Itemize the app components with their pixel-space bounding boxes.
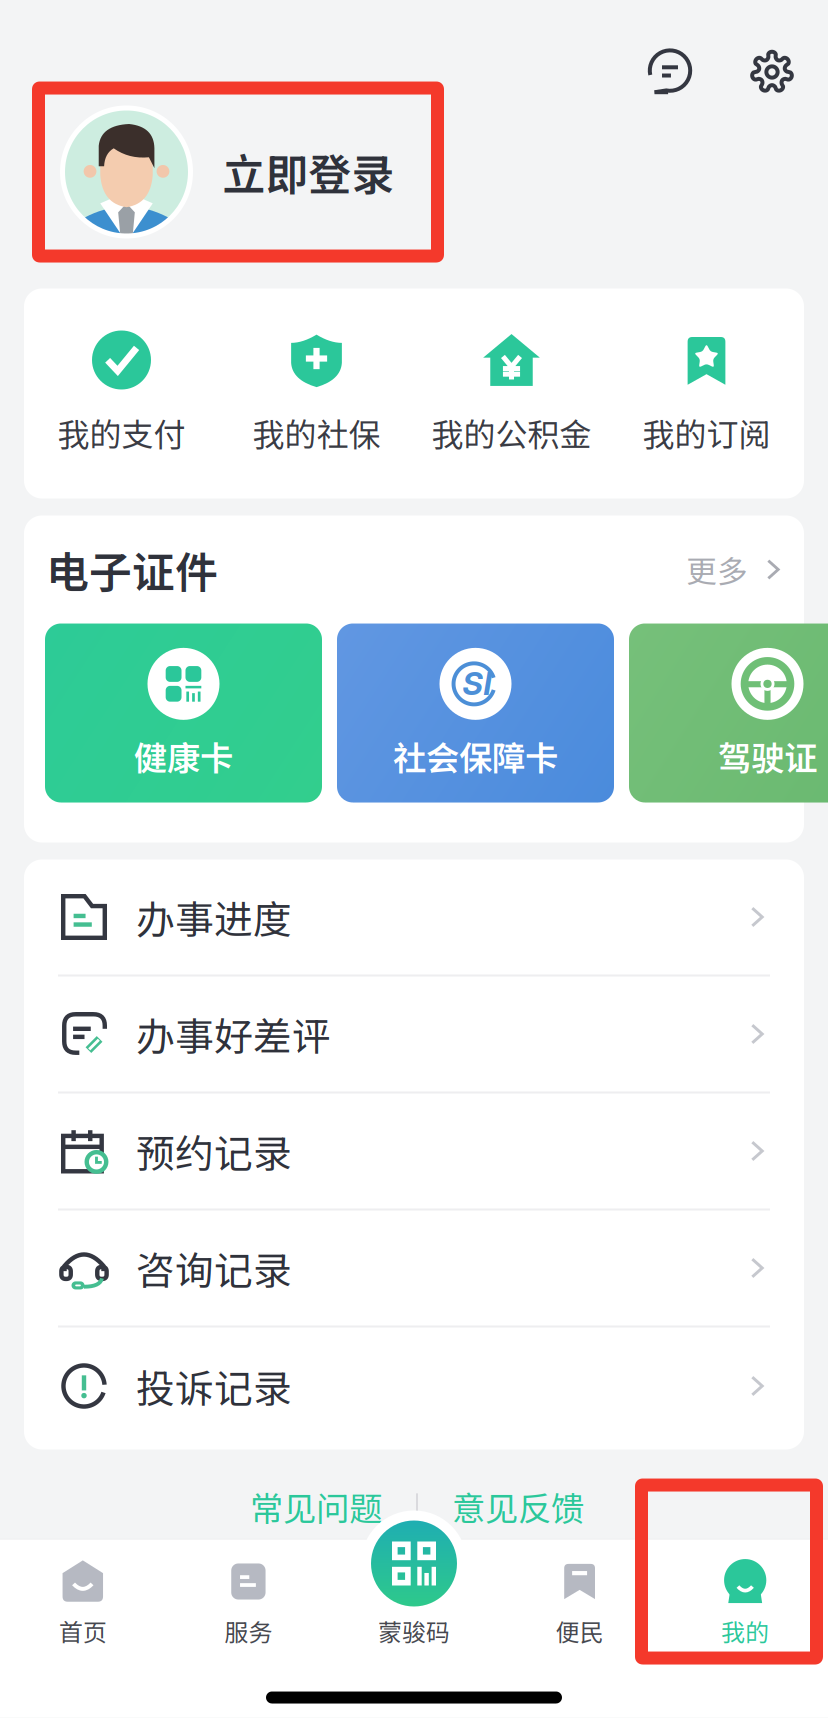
staticText: 更多 [686, 547, 748, 592]
button[interactable]: 设置 [737, 37, 807, 107]
button[interactable]: 我的订阅 [609, 330, 804, 456]
staticText: 我的 [721, 1613, 769, 1648]
staticText: 电子证件 [46, 539, 218, 600]
staticText: 投诉记录 [136, 1358, 292, 1414]
staticText: 意见反馈 [452, 1482, 584, 1530]
staticText: 常见问题 [250, 1482, 382, 1530]
staticText: 我的订阅 [642, 409, 770, 456]
button[interactable]: 我的支付 [24, 330, 219, 456]
staticText: 我的公积金 [431, 409, 591, 456]
button[interactable]: 立即登录 [38, 88, 437, 256]
staticText: 便民 [556, 1613, 604, 1648]
staticText: 蒙骏码 [378, 1613, 450, 1648]
staticText: 预约记录 [136, 1123, 292, 1179]
button[interactable]: 蒙骏码 [361, 1510, 467, 1616]
staticText: 服务 [224, 1613, 272, 1648]
staticText: 办事进度 [136, 889, 292, 945]
button[interactable]: 驾驶证 [629, 623, 828, 802]
button[interactable]: 投诉记录 [24, 1327, 804, 1444]
staticText: 办事好差评 [136, 1006, 331, 1062]
staticText: SI [462, 664, 492, 703]
staticText: 我的社保 [252, 409, 380, 456]
button[interactable]: 意见反馈 [452, 1482, 584, 1530]
staticText: 健康卡 [134, 732, 233, 780]
staticText: 首页 [59, 1613, 107, 1648]
button[interactable]: 我的社保 [219, 330, 414, 456]
button[interactable]: 我的公积金 [414, 330, 609, 456]
button[interactable]: 服务 [166, 1539, 331, 1663]
staticText: 社会保障卡 [393, 732, 558, 780]
button[interactable]: 常见问题 [250, 1482, 382, 1530]
button[interactable]: SI [337, 623, 614, 802]
staticText: 我的支付 [57, 409, 185, 456]
button[interactable]: 咨询记录 [24, 1210, 804, 1327]
staticText: 驾驶证 [718, 732, 817, 780]
button[interactable]: 预约记录 [24, 1093, 804, 1210]
button[interactable]: 首页 [0, 1539, 166, 1663]
staticText: 立即登录 [222, 141, 394, 203]
button[interactable]: 办事好差评 [24, 976, 804, 1093]
button[interactable]: 消息 [635, 37, 705, 107]
button[interactable]: 办事进度 [24, 859, 804, 976]
button[interactable]: 便民 [497, 1539, 662, 1663]
button[interactable]: 健康卡 [45, 623, 322, 802]
staticText: 咨询记录 [136, 1240, 292, 1296]
button[interactable]: 蒙骏码 [331, 1539, 497, 1663]
button[interactable]: 我的 [662, 1539, 828, 1663]
button[interactable]: 更多 [686, 547, 786, 592]
